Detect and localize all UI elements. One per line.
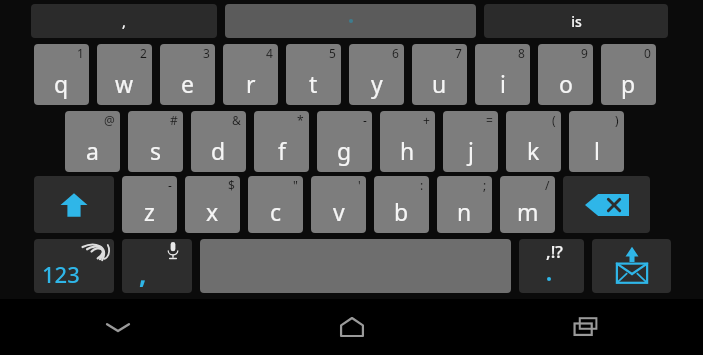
button[interactable]: 1 (34, 44, 89, 105)
staticText: 3 (203, 45, 210, 61)
button[interactable]: 2 (97, 44, 152, 105)
button[interactable]: 9 (538, 44, 593, 105)
button[interactable]: " (248, 176, 303, 233)
button[interactable]: & (191, 111, 246, 172)
staticText: y (371, 68, 383, 99)
staticText: + (423, 112, 430, 128)
button[interactable]: - (122, 176, 177, 233)
staticText: - (363, 112, 367, 128)
button[interactable]: Backspace (563, 176, 650, 233)
staticText: w (115, 68, 134, 99)
button[interactable]: @ (65, 111, 120, 172)
button[interactable]: 0 (601, 44, 656, 105)
staticText: j (468, 135, 474, 166)
button[interactable]: is (484, 4, 668, 38)
button[interactable]: ' (311, 176, 366, 233)
button[interactable]: ( (506, 111, 561, 172)
staticText: e (181, 68, 194, 99)
button[interactable]: Comma, voice input (122, 239, 192, 293)
staticText: t (309, 68, 318, 99)
button[interactable]: ) (569, 111, 624, 172)
staticText: i (500, 68, 506, 99)
button[interactable]: 5 (286, 44, 341, 105)
button[interactable]: Home (235, 299, 469, 355)
staticText: & (232, 112, 241, 128)
button[interactable]: 6 (349, 44, 404, 105)
staticText: g (337, 135, 352, 166)
button[interactable]: + (380, 111, 435, 172)
button[interactable]: # (128, 111, 183, 172)
staticText: ( (552, 112, 556, 128)
staticText: 0 (644, 45, 651, 61)
staticText: @ (104, 112, 115, 128)
staticText: , (139, 256, 147, 291)
staticText: / (545, 177, 550, 193)
staticText: ) (615, 112, 619, 128)
button[interactable]: suggestion (225, 4, 476, 38)
staticText: 123 (42, 259, 80, 289)
staticText: " (293, 177, 298, 193)
staticText: ; (483, 177, 487, 193)
button[interactable]: 8 (475, 44, 530, 105)
button[interactable]: = (443, 111, 498, 172)
staticText: - (168, 177, 172, 193)
staticText: c (270, 196, 282, 227)
staticText: 7 (455, 45, 462, 61)
button[interactable]: Send (592, 239, 671, 293)
staticText: b (394, 196, 409, 227)
staticText: # (170, 112, 178, 128)
staticText: ,!? (546, 240, 563, 263)
staticText: ' (358, 177, 361, 193)
staticText: 2 (140, 45, 147, 61)
staticText: is (571, 12, 582, 31)
staticText: 8 (518, 45, 525, 61)
staticText: p (621, 68, 636, 99)
button[interactable]: / (500, 176, 555, 233)
staticText: n (457, 196, 472, 227)
button[interactable]: Shift (34, 176, 114, 233)
staticText: a (86, 135, 99, 166)
staticText: 1 (77, 45, 84, 61)
staticText: $ (228, 177, 235, 193)
button[interactable]: $ (185, 176, 240, 233)
staticText: : (420, 177, 424, 193)
staticText: h (400, 135, 415, 166)
staticText: u (432, 68, 447, 99)
staticText: o (559, 68, 573, 99)
button[interactable]: 7 (412, 44, 467, 105)
button[interactable]: , (31, 4, 217, 38)
staticText: x (206, 196, 219, 227)
button[interactable]: Numbers and symbols (34, 239, 114, 293)
button[interactable]: Punctuation (519, 239, 584, 293)
button[interactable]: Recent apps (469, 299, 703, 355)
staticText: 9 (581, 45, 588, 61)
staticText: , (122, 12, 126, 31)
staticText: 4 (266, 45, 273, 61)
button[interactable]: ; (437, 176, 492, 233)
button[interactable]: 4 (223, 44, 278, 105)
staticText: s (150, 135, 162, 166)
staticText: 5 (329, 45, 336, 61)
staticText: v (333, 196, 345, 227)
button[interactable]: : (374, 176, 429, 233)
button[interactable]: * (254, 111, 309, 172)
staticText: = (486, 112, 493, 128)
button[interactable]: Hide keyboard (0, 299, 235, 355)
button[interactable]: - (317, 111, 372, 172)
button[interactable]: 3 (160, 44, 215, 105)
staticText: r (246, 68, 256, 99)
staticText: d (211, 135, 226, 166)
staticText: k (527, 135, 540, 166)
staticText: q (54, 68, 69, 99)
staticText: m (517, 196, 539, 227)
staticText: f (278, 135, 286, 166)
staticText: z (144, 196, 155, 227)
staticText: 6 (392, 45, 399, 61)
staticText: * (297, 112, 304, 128)
staticText: l (594, 135, 600, 166)
